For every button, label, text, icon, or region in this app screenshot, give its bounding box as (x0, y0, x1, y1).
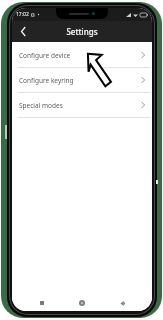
button[interactable]: Back (12, 21, 34, 42)
staticText: 17:02 (16, 11, 29, 18)
button[interactable]: Configure device (12, 43, 152, 67)
staticText: Configure keyring (19, 76, 74, 85)
button[interactable]: Back (114, 295, 130, 311)
staticText: Configure device (19, 51, 71, 60)
staticText: Settings (66, 26, 98, 37)
button[interactable]: Configure keyring (12, 68, 152, 92)
button[interactable]: Special modes (12, 93, 152, 117)
button[interactable]: Home (74, 295, 90, 311)
staticText: Special modes (19, 101, 63, 110)
button[interactable]: Recent apps (34, 295, 50, 311)
